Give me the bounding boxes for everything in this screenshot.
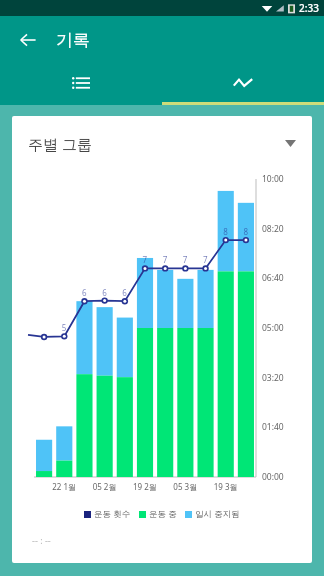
- staticText: 운동 중: [149, 508, 177, 520]
- staticText: -- : --: [32, 534, 51, 546]
- staticText: 2:33: [299, 1, 319, 15]
- staticText: 일시 중지됨: [195, 508, 240, 520]
- button[interactable]: Chart view: [162, 64, 324, 102]
- button[interactable]: List view: [0, 64, 162, 102]
- staticText: 기록: [56, 30, 90, 51]
- button[interactable]: 주별 그룹: [28, 116, 296, 171]
- staticText: 운동 횟수: [94, 508, 131, 520]
- button[interactable]: Back: [8, 20, 48, 60]
- staticText: 주별 그룹: [28, 134, 92, 154]
